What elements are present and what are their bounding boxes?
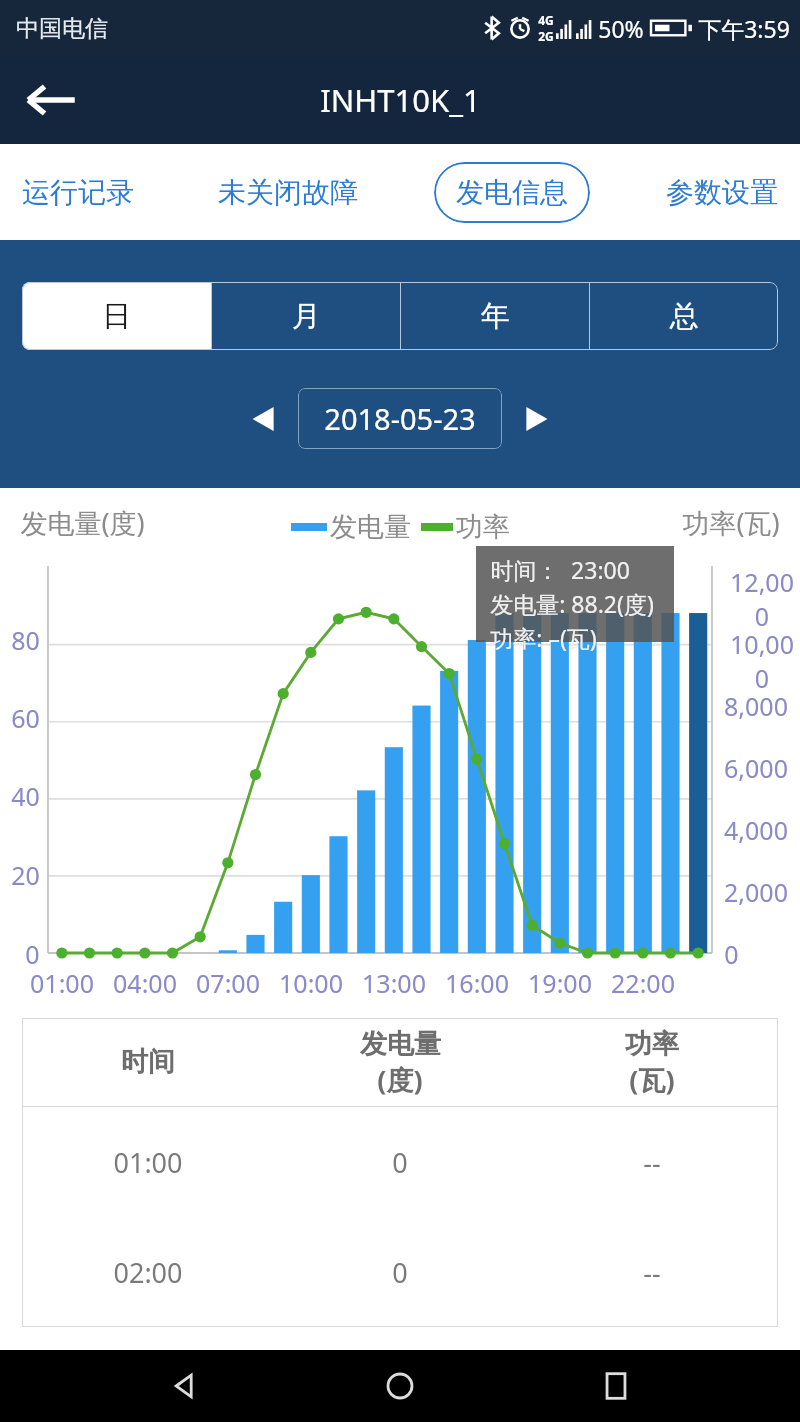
- staticText: 月: [292, 298, 321, 335]
- staticText: 2G: [538, 28, 554, 44]
- staticText: 13:00: [362, 966, 426, 1000]
- staticText: 07:00: [196, 966, 260, 1000]
- staticText: 01:00: [30, 966, 94, 1000]
- staticText: 60: [11, 701, 40, 735]
- staticText: 50%: [598, 13, 644, 44]
- staticText: (瓦): [629, 1061, 675, 1098]
- button[interactable]: 总: [590, 282, 778, 350]
- staticText: 2,000: [724, 875, 788, 909]
- staticText: 0: [724, 937, 739, 971]
- staticText: 运行记录: [22, 175, 134, 210]
- staticText: 发电量(度): [20, 504, 145, 541]
- staticText: 02:00: [113, 1254, 183, 1291]
- button[interactable]: 01:00: [22, 1107, 778, 1217]
- button[interactable]: Back: [24, 73, 78, 127]
- staticText: 0: [25, 937, 40, 971]
- button[interactable]: 02:00: [22, 1217, 778, 1327]
- button[interactable]: Previous day: [240, 395, 288, 443]
- staticText: 01:00: [113, 1144, 183, 1181]
- staticText: (度): [377, 1061, 423, 1098]
- button[interactable]: Next day: [512, 395, 560, 443]
- button[interactable]: 参数设置: [658, 163, 786, 222]
- staticText: 中国电信: [16, 14, 108, 43]
- staticText: 4,000: [724, 813, 788, 847]
- staticText: 参数设置: [666, 175, 778, 210]
- staticText: 80: [11, 623, 40, 657]
- button[interactable]: 发电信息: [434, 162, 590, 223]
- staticText: 未关闭故障: [218, 175, 358, 210]
- staticText: 发电量: 88.2(度): [490, 588, 654, 619]
- staticText: --: [643, 1254, 661, 1291]
- button[interactable]: 日: [22, 282, 211, 350]
- button[interactable]: 2018-05-23: [298, 388, 502, 449]
- staticText: --: [643, 1144, 661, 1181]
- staticText: 2018-05-23: [324, 399, 476, 438]
- staticText: 功率(瓦): [682, 504, 780, 541]
- button[interactable]: 运行记录: [14, 163, 142, 222]
- button[interactable]: Back: [152, 1354, 216, 1418]
- staticText: 20: [11, 858, 40, 892]
- staticText: 年: [481, 298, 510, 335]
- staticText: 6,000: [724, 751, 788, 785]
- staticText: 发电信息: [456, 175, 568, 210]
- staticText: 下午3:59: [698, 13, 790, 44]
- staticText: 0: [392, 1144, 408, 1181]
- staticText: 发电量: [330, 510, 411, 544]
- staticText: 22:00: [611, 966, 675, 1000]
- staticText: 40: [11, 779, 40, 813]
- staticText: 04:00: [113, 966, 177, 1000]
- button[interactable]: 未关闭故障: [210, 163, 366, 222]
- button[interactable]: Home: [368, 1354, 432, 1418]
- staticText: 10:00: [279, 966, 343, 1000]
- staticText: INHT10K_1: [320, 79, 481, 121]
- staticText: 0: [392, 1254, 408, 1291]
- button[interactable]: 年: [401, 282, 589, 350]
- staticText: 日: [102, 298, 131, 335]
- staticText: 时间: [121, 1045, 175, 1079]
- staticText: 时间： 23:00: [490, 554, 630, 585]
- staticText: 8,000: [724, 689, 788, 723]
- staticText: 总: [670, 298, 699, 335]
- staticText: 4G: [538, 12, 554, 28]
- staticText: 功率: –(瓦): [490, 622, 597, 653]
- staticText: 10,000: [724, 627, 800, 695]
- staticText: 12,000: [724, 565, 800, 633]
- staticText: 16:00: [445, 966, 509, 1000]
- button[interactable]: 月: [212, 282, 400, 350]
- staticText: 功率: [625, 1027, 679, 1061]
- staticText: 发电量: [360, 1027, 441, 1061]
- staticText: 19:00: [528, 966, 592, 1000]
- button[interactable]: Recents: [584, 1354, 648, 1418]
- staticText: 功率: [456, 510, 510, 544]
